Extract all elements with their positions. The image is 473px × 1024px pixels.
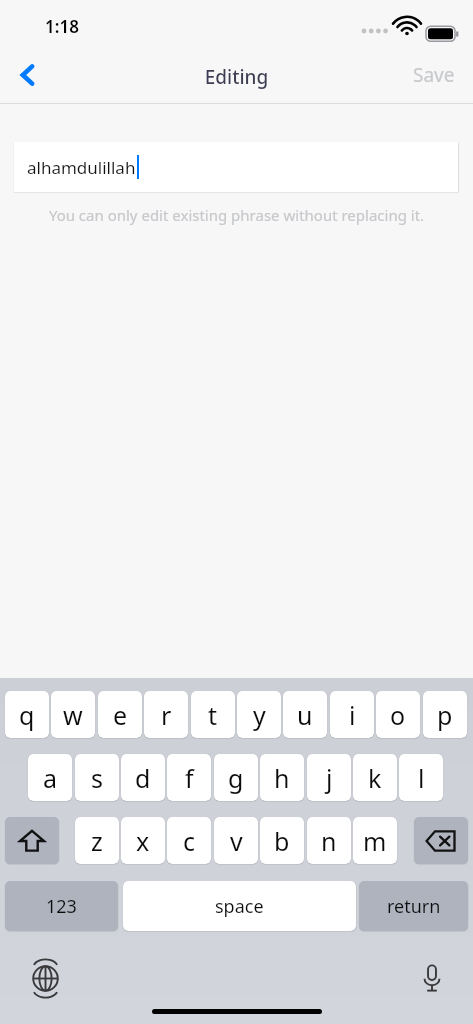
staticText: You can only edit existing phrase withou… xyxy=(0,205,473,225)
button[interactable]: w xyxy=(51,691,95,738)
staticText: c xyxy=(183,824,196,858)
staticText: k xyxy=(368,761,382,795)
staticText: w xyxy=(63,698,83,732)
staticText: b xyxy=(274,824,290,858)
button[interactable]: r xyxy=(144,691,188,738)
button[interactable]: j xyxy=(307,754,351,801)
staticText: i xyxy=(349,698,356,732)
staticText: h xyxy=(274,761,290,795)
staticText: 123 xyxy=(46,894,77,919)
button[interactable]: x xyxy=(121,817,165,864)
button[interactable]: o xyxy=(376,691,420,738)
button[interactable]: p xyxy=(423,691,467,738)
button[interactable]: g xyxy=(214,754,258,801)
button[interactable]: c xyxy=(167,817,211,864)
button[interactable]: m xyxy=(353,817,397,864)
staticText: return xyxy=(387,894,441,919)
staticText: v xyxy=(230,824,243,858)
button[interactable]: z xyxy=(75,817,119,864)
staticText: g xyxy=(228,761,244,795)
staticText: r xyxy=(161,698,172,732)
button[interactable]: Backspace xyxy=(414,817,468,864)
staticText: 1:18 xyxy=(45,15,79,38)
staticText: space xyxy=(215,894,264,919)
button[interactable]: u xyxy=(283,691,327,738)
button[interactable]: q xyxy=(5,691,49,738)
button[interactable]: a xyxy=(28,754,72,801)
staticText: alhamdulillah xyxy=(27,156,136,179)
staticText: f xyxy=(185,761,194,795)
staticText: t xyxy=(208,698,218,732)
button[interactable]: f xyxy=(167,754,211,801)
staticText: x xyxy=(136,824,150,858)
staticText: Editing xyxy=(0,64,473,90)
staticText: o xyxy=(390,698,406,732)
staticText: d xyxy=(135,761,151,795)
button[interactable]: k xyxy=(353,754,397,801)
button[interactable]: l xyxy=(399,754,443,801)
button[interactable]: d xyxy=(121,754,165,801)
staticText: z xyxy=(91,824,103,858)
staticText: u xyxy=(297,698,313,732)
staticText: s xyxy=(91,761,103,795)
button[interactable]: e xyxy=(98,691,142,738)
button[interactable]: v xyxy=(214,817,258,864)
button[interactable]: space xyxy=(123,881,356,931)
button[interactable]: Save xyxy=(395,52,473,98)
staticText: e xyxy=(113,698,128,732)
button[interactable]: alhamdulillah xyxy=(14,142,458,192)
button[interactable]: Next keyboard xyxy=(22,955,68,1001)
button[interactable]: 123 xyxy=(5,881,118,931)
staticText: Save xyxy=(413,62,455,88)
button[interactable]: s xyxy=(75,754,119,801)
button[interactable]: Dictate xyxy=(409,955,455,1001)
staticText: y xyxy=(253,698,266,732)
staticText: p xyxy=(437,698,453,732)
button[interactable]: b xyxy=(260,817,304,864)
staticText: q xyxy=(19,698,35,732)
button[interactable]: i xyxy=(330,691,374,738)
staticText: n xyxy=(321,824,337,858)
button[interactable]: Shift xyxy=(5,817,59,864)
button[interactable]: return xyxy=(359,881,468,931)
button[interactable]: t xyxy=(191,691,235,738)
button[interactable]: Back xyxy=(0,52,56,98)
staticText: j xyxy=(326,761,333,795)
staticText: a xyxy=(43,761,58,795)
button[interactable]: n xyxy=(307,817,351,864)
button[interactable]: h xyxy=(260,754,304,801)
button[interactable]: y xyxy=(237,691,281,738)
staticText: m xyxy=(363,824,387,858)
staticText: l xyxy=(418,761,425,795)
